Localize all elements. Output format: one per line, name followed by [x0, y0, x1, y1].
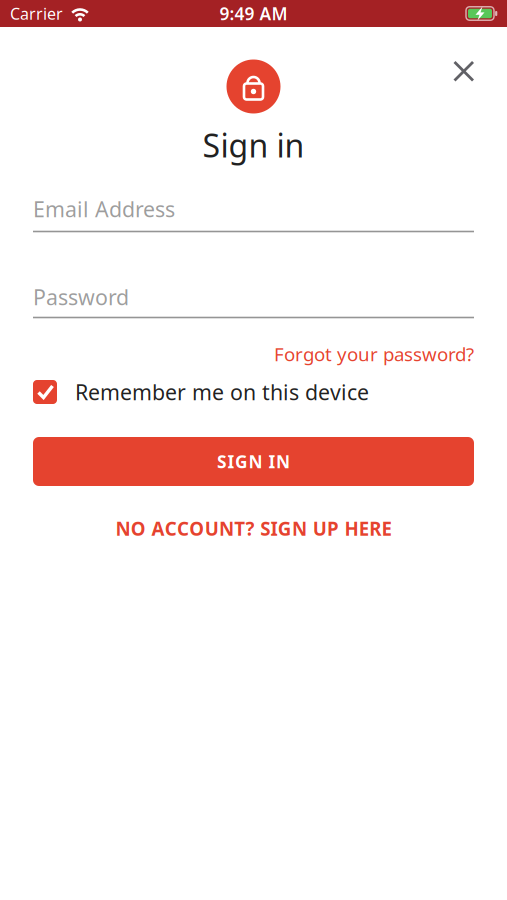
staticText: Password — [33, 283, 129, 311]
staticText: Remember me on this device — [75, 378, 369, 406]
staticText: Forgot your password? — [274, 342, 474, 366]
staticText: 9:49 AM — [219, 2, 287, 25]
staticText: Carrier — [10, 3, 63, 24]
staticText: NO ACCOUNT? SIGN UP HERE — [116, 516, 391, 541]
staticText: Sign in — [202, 124, 304, 166]
staticText: Email Address — [33, 195, 175, 223]
staticText: SIGN IN — [217, 450, 290, 473]
